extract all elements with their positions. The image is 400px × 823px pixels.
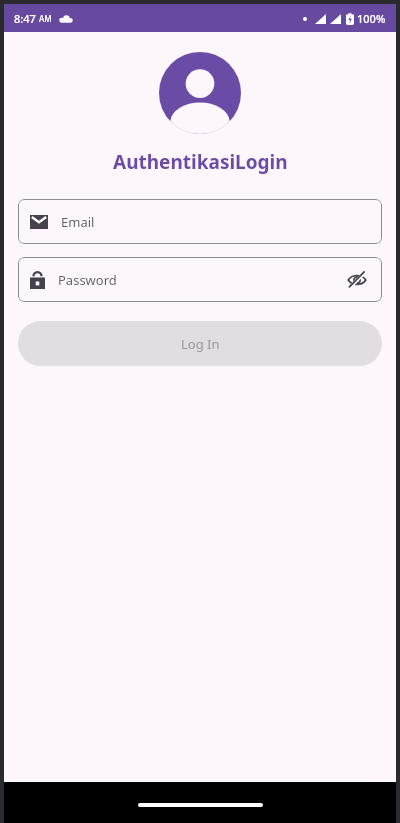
button[interactable]: Log In bbox=[18, 321, 382, 366]
button[interactable]: Show password bbox=[344, 267, 370, 293]
staticText: AM bbox=[39, 13, 52, 24]
staticText: AuthentikasiLogin bbox=[113, 149, 288, 175]
staticText: 8:47 bbox=[14, 11, 36, 26]
button[interactable]: Password bbox=[18, 257, 382, 302]
staticText: Log In bbox=[181, 335, 220, 353]
staticText: Email bbox=[61, 213, 95, 231]
staticText: 100% bbox=[357, 11, 386, 26]
button[interactable]: Email bbox=[18, 199, 382, 244]
staticText: Password bbox=[58, 271, 117, 289]
